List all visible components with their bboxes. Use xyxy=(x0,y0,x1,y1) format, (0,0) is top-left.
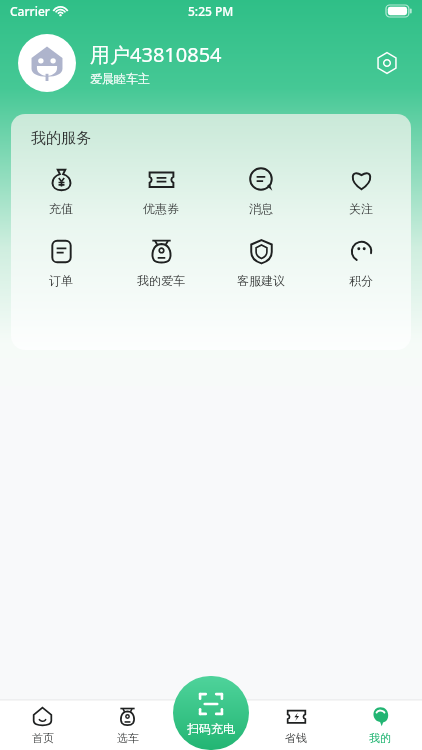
staticText: 充值 xyxy=(49,201,73,216)
button[interactable]: 订单 xyxy=(11,236,111,290)
staticText: 积分 xyxy=(349,273,373,288)
staticText: 省钱 xyxy=(285,731,307,745)
staticText: 爱晨睦车主 xyxy=(90,71,150,86)
button[interactable]: 我的爱车 xyxy=(111,236,211,290)
button[interactable]: 客服建议 xyxy=(211,236,311,290)
staticText: 扫码充电 xyxy=(187,721,235,736)
button[interactable]: 优惠券 xyxy=(111,164,211,218)
staticText: 我的服务 xyxy=(31,129,91,148)
button[interactable]: Avatar xyxy=(18,34,76,92)
staticText: 5:25 PM xyxy=(188,3,234,19)
button[interactable]: 积分 xyxy=(311,236,411,290)
staticText: 关注 xyxy=(349,201,373,216)
staticText: 订单 xyxy=(49,273,73,288)
staticText: 消息 xyxy=(249,201,273,216)
staticText: 客服建议 xyxy=(237,273,285,288)
staticText: 我的爱车 xyxy=(137,273,185,288)
staticText: 选车 xyxy=(117,731,139,745)
button[interactable]: 扫码充电 xyxy=(173,676,249,750)
staticText: 我的 xyxy=(369,731,391,745)
staticText: 用户43810854 xyxy=(90,41,222,68)
staticText: 优惠券 xyxy=(143,201,179,216)
button[interactable]: 关注 xyxy=(311,164,411,218)
staticText: 首页 xyxy=(32,731,54,745)
button[interactable]: 消息 xyxy=(211,164,311,218)
button[interactable]: 省钱 xyxy=(254,700,338,750)
button[interactable]: 我的 xyxy=(338,700,422,750)
staticText: Carrier xyxy=(10,3,50,19)
button[interactable]: Settings xyxy=(370,46,404,80)
button[interactable]: 首页 xyxy=(0,700,85,750)
button[interactable]: 选车 xyxy=(85,700,170,750)
button[interactable]: 充值 xyxy=(11,164,111,218)
